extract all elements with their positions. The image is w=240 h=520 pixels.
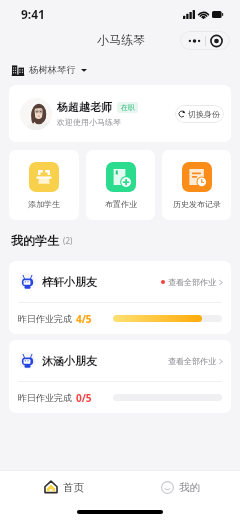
button[interactable]: 布置作业	[86, 150, 155, 220]
other: Home	[44, 480, 58, 494]
staticText: 历史发布记录	[173, 199, 221, 209]
button[interactable]: 杨树林琴行	[12, 56, 240, 84]
button[interactable]: 查看全部作业	[161, 277, 223, 287]
staticText: 昨日作业完成	[18, 392, 72, 403]
button[interactable]: More options and close	[180, 31, 230, 50]
button[interactable]: Home	[0, 471, 120, 503]
button[interactable]: 查看全部作业	[168, 356, 223, 366]
button[interactable]: 沐涵小朋友	[9, 340, 231, 413]
staticText: 查看全部作业	[168, 356, 216, 366]
staticText: 在职	[121, 103, 135, 112]
staticText: 0/5	[76, 391, 92, 405]
staticText: 首页	[63, 481, 84, 494]
button[interactable]: 杨超越老师	[9, 85, 231, 142]
button[interactable]: Profile	[120, 471, 240, 503]
staticText: 小马练琴	[97, 32, 145, 47]
staticText: 查看全部作业	[168, 277, 216, 287]
button[interactable]: 切换身份	[175, 105, 224, 123]
staticText: 添加学生	[28, 199, 60, 209]
button[interactable]: 历史发布记录	[162, 150, 231, 220]
staticText: 我的学生	[11, 233, 59, 248]
other: Profile	[161, 481, 174, 494]
staticText: 欢迎使用小马练琴	[57, 117, 121, 127]
staticText: 我的	[179, 481, 200, 494]
staticText: 4/5	[76, 312, 92, 326]
staticText: 昨日作业完成	[18, 313, 72, 324]
staticText: 杨超越老师	[57, 100, 112, 114]
staticText: 梓轩小朋友	[42, 275, 97, 289]
staticText: 9:41	[21, 6, 45, 22]
staticText: 沐涵小朋友	[42, 354, 97, 368]
button[interactable]: 梓轩小朋友	[9, 261, 231, 334]
staticText: 切换身份	[188, 109, 220, 119]
staticText: 杨树林琴行	[29, 64, 76, 76]
button[interactable]: 添加学生	[9, 150, 79, 220]
staticText: (2)	[63, 235, 73, 246]
staticText: 布置作业	[105, 199, 137, 209]
